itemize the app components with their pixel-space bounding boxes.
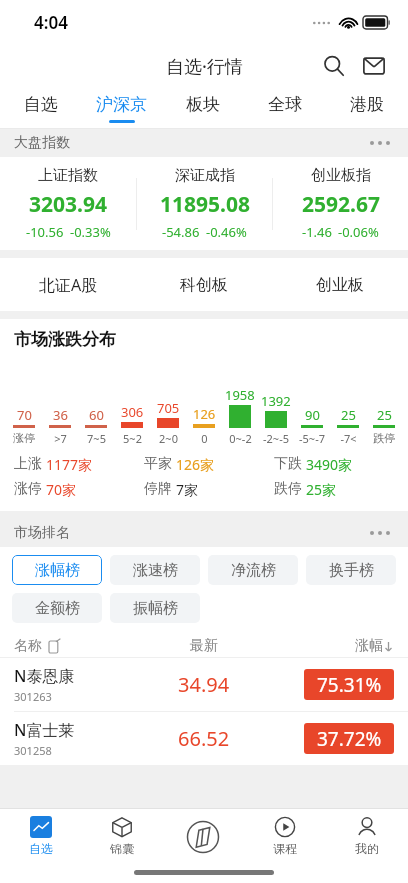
button[interactable]: More options [368,141,392,145]
staticText: 126 [193,405,216,423]
staticText: 涨停 [14,480,42,498]
button[interactable]: 全球 [244,88,326,128]
staticText: 上证指数 [38,166,98,185]
button[interactable]: 涨速榜 [110,555,200,585]
staticText: 306 [121,403,144,421]
staticText: 126家 [176,455,215,474]
button[interactable]: N泰恩康 [0,658,408,711]
staticText: >7 [54,431,67,446]
staticText: 金额榜 [35,599,80,618]
button[interactable]: 沪深京 [81,88,162,128]
staticText: 66.52 [178,725,230,752]
staticText: 沪深京 [96,94,147,115]
button[interactable]: 北证A股 [0,258,136,311]
staticText: 1177家 [46,455,93,474]
staticText: -0.46% [206,223,247,241]
staticText: 跌停 [274,480,302,498]
staticText: 港股 [350,94,384,115]
staticText: -1.46 [302,223,332,241]
button[interactable]: 创业板指 [273,157,408,250]
staticText: 自选 [29,841,53,856]
staticText: 最新 [190,637,218,655]
button[interactable]: 锦囊 [81,809,162,865]
staticText: 7家 [176,480,199,499]
staticText: 25家 [306,480,337,499]
staticText: 301258 [14,743,52,758]
button[interactable]: 涨幅榜 [12,555,102,585]
staticText: 净流榜 [231,561,276,580]
button[interactable]: 振幅榜 [110,593,200,623]
staticText: 涨幅 [355,637,383,655]
staticText: 换手榜 [329,561,374,580]
staticText: 0~-2 [229,431,252,446]
button[interactable]: 换手榜 [306,555,396,585]
staticText: 全球 [268,94,302,115]
staticText: N泰恩康 [14,665,75,687]
staticText: 名称 [14,637,42,655]
button[interactable]: More options [368,531,392,535]
staticText: 25 [341,406,356,424]
staticText: 3490家 [306,455,353,474]
staticText: 板块 [186,94,220,115]
staticText: 平家 [144,455,172,473]
button[interactable]: 上证指数 [0,157,136,250]
button[interactable]: N富士莱 [0,712,408,765]
staticText: 我的 [355,841,379,856]
staticText: 1958 [225,386,255,404]
staticText: -0.06% [338,223,379,241]
staticText: 1392 [261,392,291,410]
button[interactable]: 课程 [244,809,326,865]
staticText: -5~-7 [299,431,325,446]
staticText: 5~2 [123,431,142,446]
staticText: 70家 [46,480,77,499]
staticText: 锦囊 [110,841,134,856]
staticText: -2~-5 [263,431,289,446]
staticText: 90 [305,406,320,424]
staticText: -0.33% [70,223,111,241]
button[interactable]: 深证成指 [137,157,272,250]
button[interactable]: 金额榜 [12,593,102,623]
staticText: 市场涨跌分布 [14,329,116,350]
staticText: 37.72% [317,726,382,752]
staticText: 自选 [24,94,58,115]
staticText: 停牌 [144,480,172,498]
button[interactable]: Messages [354,46,394,86]
staticText: 4:04 [34,11,68,34]
button[interactable]: 自选 [0,809,81,865]
staticText: 70 [17,406,32,424]
staticText: 涨幅榜 [35,561,80,580]
staticText: 25 [377,406,392,424]
staticText: 涨速榜 [133,561,178,580]
staticText: 科创板 [180,275,228,295]
staticText: 301263 [14,689,52,704]
staticText: 深证成指 [175,166,235,185]
staticText: 市场排名 [14,524,70,542]
button[interactable]: 板块 [162,88,244,128]
button[interactable]: 净流榜 [208,555,298,585]
staticText: 涨停 [13,431,35,445]
staticText: 课程 [273,841,297,856]
button[interactable]: 我的 [326,809,408,865]
button[interactable]: 创业板 [272,258,408,311]
staticText: 上涨 [14,455,42,473]
button[interactable]: Search [314,46,354,86]
staticText: 下跌 [274,455,302,473]
staticText: 36 [53,406,68,424]
staticText: 大盘指数 [14,134,70,152]
staticText: -54.86 [162,223,200,241]
staticText: 11895.08 [160,190,250,219]
staticText: 振幅榜 [133,599,178,618]
staticText: 2~0 [159,431,178,446]
staticText: 0 [201,431,208,446]
button[interactable]: 科创板 [136,258,272,311]
button[interactable]: 港股 [326,88,408,128]
staticText: 60 [89,406,104,424]
staticText: 创业板指 [311,166,371,185]
button[interactable]: Center action [162,809,244,865]
staticText: -7< [340,431,357,446]
staticText: 75.31% [317,672,382,698]
button[interactable]: 自选 [0,88,81,128]
staticText: 3203.94 [29,190,107,219]
staticText: 705 [157,399,180,417]
staticText: -10.56 [26,223,64,241]
